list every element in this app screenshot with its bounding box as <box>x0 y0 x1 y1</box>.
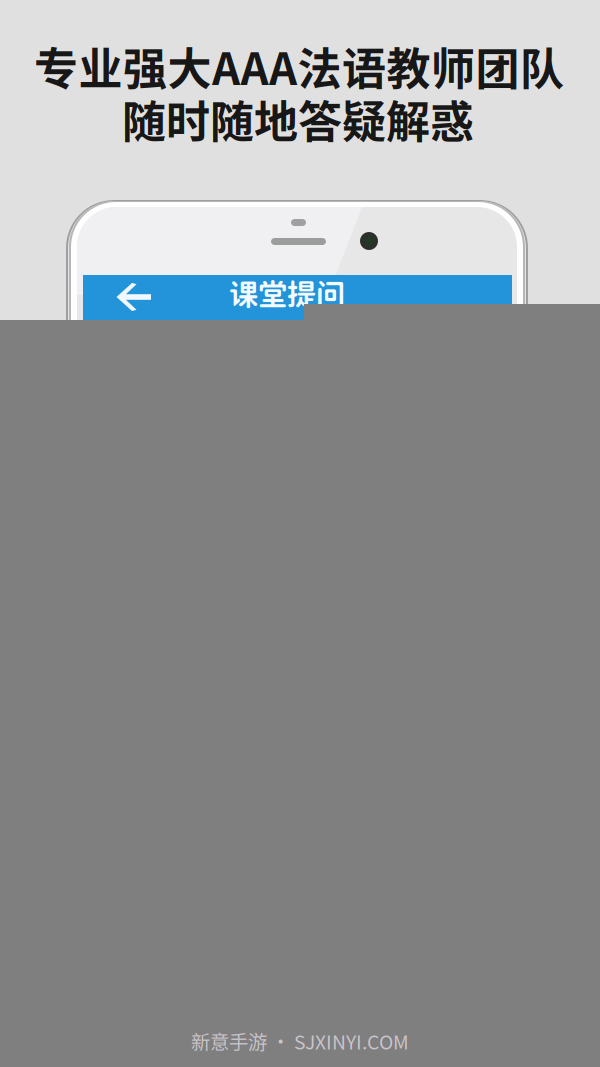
staticText: 课堂提问 <box>229 277 345 311</box>
staticText: 专业强大AAA法语教师团队 <box>34 34 564 98</box>
button[interactable]: Back <box>101 267 167 327</box>
staticText: 随时随地答疑解惑 <box>122 87 474 151</box>
staticText: 新意手游 • SJXINYI.COM <box>191 1027 409 1055</box>
